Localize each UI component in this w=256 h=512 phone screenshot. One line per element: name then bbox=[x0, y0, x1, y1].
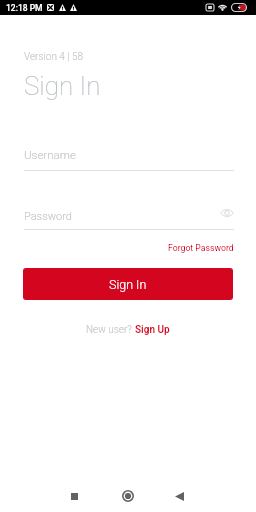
staticText: Sign In bbox=[109, 277, 147, 292]
button[interactable]: Home bbox=[114, 482, 142, 510]
staticText: Version 4 | 58 bbox=[24, 51, 84, 63]
button[interactable]: Sign Up bbox=[135, 324, 170, 336]
button[interactable]: Forgot Password bbox=[168, 243, 234, 253]
button[interactable]: Back bbox=[165, 482, 193, 510]
button[interactable]: Sign In bbox=[23, 268, 233, 300]
staticText: New user? bbox=[86, 324, 135, 336]
button[interactable]: Recents bbox=[60, 482, 88, 510]
staticText: Sign In bbox=[24, 71, 101, 101]
staticText: 12:18 PM bbox=[6, 3, 43, 13]
staticText: Username bbox=[24, 148, 76, 161]
button[interactable]: Username bbox=[24, 146, 234, 171]
staticText: Password bbox=[24, 210, 72, 223]
button[interactable]: Show password bbox=[220, 207, 234, 219]
button[interactable]: Password bbox=[24, 205, 234, 230]
